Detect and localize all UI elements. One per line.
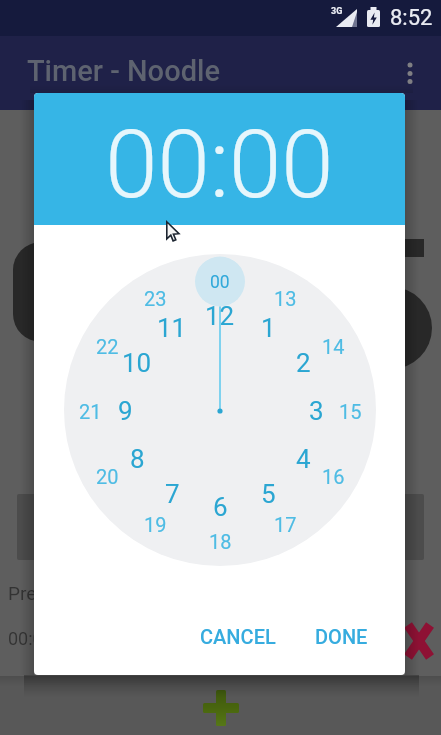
staticText: 11 xyxy=(157,313,187,343)
staticText: Timer - Noodle xyxy=(27,54,221,88)
staticText: 1 xyxy=(261,313,276,343)
button[interactable] xyxy=(64,254,376,566)
staticText: 20 xyxy=(96,465,119,488)
staticText: 15 xyxy=(339,400,362,423)
staticText: 3 xyxy=(309,396,324,426)
staticText: 00:00 xyxy=(105,109,334,220)
button[interactable]: CANCEL xyxy=(193,616,283,656)
staticText: 3G xyxy=(331,6,343,17)
button[interactable] xyxy=(197,684,245,732)
staticText: 5 xyxy=(261,479,276,509)
staticText: 17 xyxy=(274,513,297,536)
staticText: 16 xyxy=(322,465,345,488)
staticText: DONE xyxy=(315,625,368,648)
staticText: 23 xyxy=(144,287,167,310)
staticText: 19 xyxy=(144,513,167,536)
staticText: 8:52 xyxy=(390,5,433,31)
staticText: CANCEL xyxy=(200,625,276,648)
staticText: 00:05 xyxy=(8,628,53,649)
staticText: 00 xyxy=(210,272,230,293)
staticText: Preset Timers xyxy=(8,582,126,604)
button[interactable]: DONE xyxy=(303,616,379,656)
staticText: 18 xyxy=(209,530,232,553)
staticText: 4 xyxy=(296,444,311,474)
staticText: 2 xyxy=(296,348,311,378)
staticText: 21 xyxy=(79,400,102,423)
staticText: 8 xyxy=(130,444,145,474)
staticText: 9 xyxy=(118,396,133,426)
staticText: 14 xyxy=(322,335,345,358)
staticText: 12 xyxy=(205,301,235,331)
button[interactable] xyxy=(386,36,434,110)
staticText: 6 xyxy=(213,492,228,522)
staticText: 7 xyxy=(165,479,180,509)
staticText: 22 xyxy=(96,335,119,358)
staticText: 10 xyxy=(122,348,152,378)
staticText: 13 xyxy=(274,287,297,310)
